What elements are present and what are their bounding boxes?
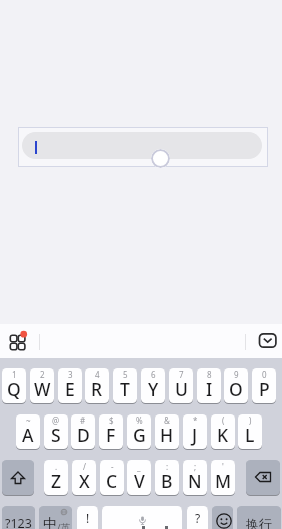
staticText: J [192,423,198,447]
button[interactable]: ; [183,460,207,495]
staticText: P [259,377,270,401]
button[interactable]: @ [44,414,68,449]
staticText: 换行 [246,516,272,529]
button[interactable]: ~ [16,414,40,449]
button[interactable]: & [155,414,179,449]
button[interactable] [18,127,268,167]
staticText: ; [194,461,197,472]
button[interactable]: $ [99,414,123,449]
staticText: X [79,469,90,493]
staticText: Y [148,377,159,401]
button[interactable]: ? [187,506,208,529]
staticText: / [83,461,86,472]
staticText: M [215,469,232,493]
staticText: # [80,415,86,426]
button[interactable]: - [100,460,124,495]
staticText: E [65,377,75,401]
button[interactable]: 3 [58,368,82,403]
staticText: L [245,423,255,447]
staticText: Q [7,377,21,401]
staticText: 8 [207,369,212,380]
button[interactable]: * [183,414,207,449]
button[interactable]: ?123 [2,506,35,529]
button[interactable]: . [44,460,68,495]
staticText: 4 [95,369,100,380]
staticText: Z [51,469,62,493]
staticText: ?123 [5,515,32,529]
button[interactable]: 1 [2,368,26,403]
staticText: ~ [26,415,31,426]
staticText: 7 [179,369,184,380]
staticText: /英 [57,521,71,529]
button[interactable]: # [71,414,95,449]
staticText: G [133,423,146,447]
button[interactable]: _ [127,460,151,495]
staticText: ? [195,510,201,526]
button[interactable]: 中 [39,506,72,529]
staticText: D [77,423,90,447]
button[interactable] [2,460,34,495]
button[interactable]: 0 [252,368,276,403]
staticText: % [136,415,143,426]
button[interactable]: : [155,460,179,495]
staticText: A [22,423,34,447]
staticText: C [106,469,118,493]
staticText: @ [52,415,60,426]
button[interactable]: 9 [224,368,248,403]
staticText: & [164,415,170,426]
staticText: F [106,423,116,447]
button[interactable] [256,330,280,352]
button[interactable]: % [127,414,151,449]
button[interactable]: ( [211,414,235,449]
staticText: 1 [12,369,17,380]
staticText: I [206,377,213,401]
staticText: * [193,415,198,426]
button[interactable] [212,506,233,529]
button[interactable]: ) [238,414,262,449]
staticText: ' [222,461,224,472]
button[interactable]: ' [211,460,235,495]
staticText: 0 [262,369,267,380]
staticText: ! [86,510,90,526]
staticText: T [120,377,130,401]
staticText: _ [137,461,141,472]
staticText: N [188,469,202,493]
staticText: . [55,461,58,472]
staticText: 2 [40,369,45,380]
staticText: 6 [151,369,156,380]
staticText: U [175,377,188,401]
button[interactable] [102,506,182,529]
button[interactable]: 8 [197,368,221,403]
staticText: 3 [68,369,73,380]
staticText: 5 [123,369,128,380]
staticText: H [160,423,174,447]
button[interactable]: 4 [85,368,109,403]
staticText: B [161,469,173,493]
button[interactable]: 换行 [237,506,281,529]
staticText: : [166,461,169,472]
button[interactable]: / [72,460,96,495]
button[interactable]: ! [77,506,98,529]
button[interactable]: 7 [169,368,193,403]
staticText: ) [249,415,252,426]
staticText: W [34,377,51,401]
staticText: 9 [234,369,239,380]
staticText: V [134,469,145,493]
staticText: R [91,377,103,401]
button[interactable] [6,330,30,354]
button[interactable]: 5 [113,368,137,403]
staticText: K [217,423,229,447]
staticText: S [51,423,61,447]
button[interactable]: 2 [30,368,54,403]
staticText: 中 [43,515,58,529]
button[interactable]: 6 [141,368,165,403]
button[interactable] [246,460,280,495]
staticText: $ [109,415,114,426]
staticText: O [229,377,243,401]
staticText: - [111,461,114,472]
staticText: ( [222,415,225,426]
